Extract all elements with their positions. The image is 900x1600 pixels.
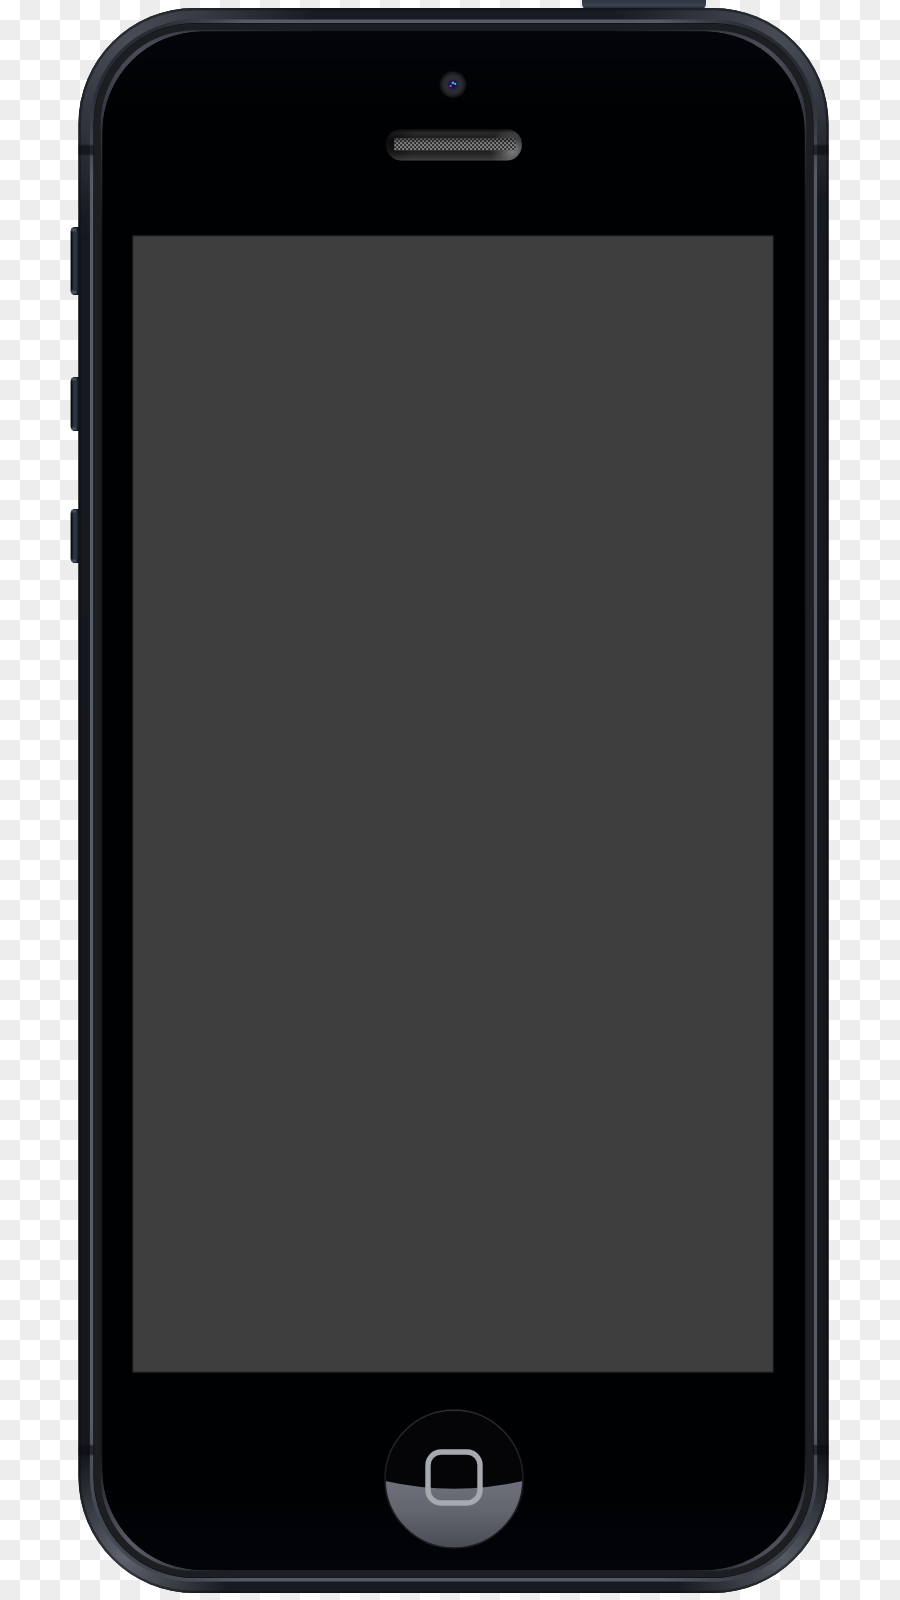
button[interactable]: Volume down [66, 507, 86, 565]
button[interactable]: Ring / silent switch [66, 225, 86, 297]
button[interactable]: Sleep / wake button [582, 0, 706, 12]
button[interactable]: Volume up [66, 375, 86, 433]
button[interactable]: Home button [385, 1410, 523, 1548]
